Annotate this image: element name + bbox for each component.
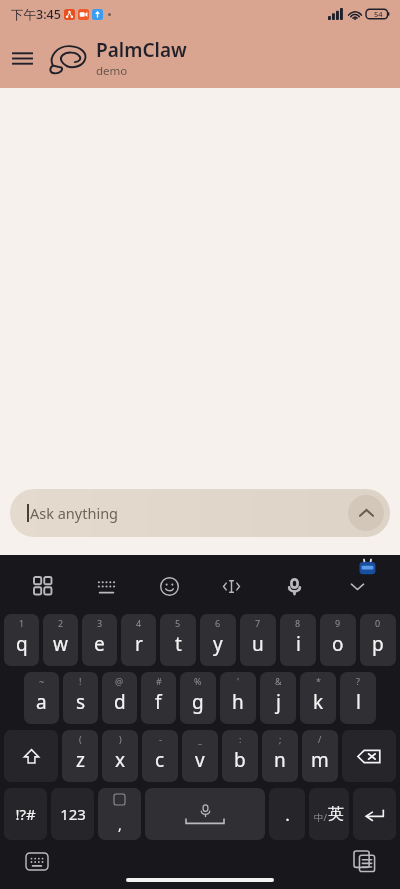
staticText: @	[115, 675, 124, 687]
button[interactable]: 123	[51, 788, 94, 840]
staticText: y	[213, 631, 223, 657]
button[interactable]: Enter	[353, 788, 396, 840]
staticText: /	[318, 733, 322, 745]
button[interactable]: !	[63, 672, 98, 724]
button[interactable]: Assistant	[357, 557, 378, 578]
button[interactable]: :	[222, 730, 258, 782]
staticText: u	[252, 631, 264, 657]
button[interactable]: Comma and settings	[98, 788, 141, 840]
staticText: z	[76, 747, 85, 773]
button[interactable]: '	[220, 672, 256, 724]
button[interactable]: Clipboard	[350, 847, 378, 875]
staticText: 下午3:45	[11, 6, 61, 23]
button[interactable]: Send	[348, 495, 384, 531]
staticText: ,	[118, 815, 122, 834]
button[interactable]: 2	[43, 614, 78, 666]
button[interactable]: 6	[200, 614, 236, 666]
staticText: .	[285, 803, 290, 826]
button[interactable]: 0	[360, 614, 396, 666]
staticText: a	[36, 689, 47, 715]
staticText: 7	[255, 617, 261, 629]
button[interactable]: Backspace	[342, 730, 396, 782]
button[interactable]: !?#	[4, 788, 47, 840]
staticText: ~	[39, 675, 45, 687]
staticText: ?	[356, 675, 360, 687]
staticText: m	[311, 747, 329, 773]
staticText: %	[194, 675, 202, 687]
staticText: s	[76, 689, 86, 715]
button[interactable]: ;	[262, 730, 298, 782]
staticText: d	[114, 689, 126, 715]
staticText: n	[274, 747, 286, 773]
staticText: j	[276, 689, 281, 715]
staticText: 4	[136, 617, 142, 629]
staticText: demo	[96, 63, 128, 79]
button[interactable]: ?	[340, 672, 376, 724]
button[interactable]: -	[142, 730, 178, 782]
staticText: 8	[295, 617, 301, 629]
button[interactable]: Switch keyboard	[23, 847, 51, 875]
staticText: 0	[375, 617, 381, 629]
button[interactable]: %	[180, 672, 216, 724]
staticText: t	[175, 631, 182, 657]
button[interactable]: &	[260, 672, 296, 724]
button[interactable]: Apps	[23, 566, 63, 606]
staticText: )	[119, 733, 122, 745]
button[interactable]: @	[102, 672, 137, 724]
staticText: 2	[58, 617, 64, 629]
button[interactable]: 5	[160, 614, 196, 666]
button[interactable]: Hide keyboard	[337, 566, 377, 606]
button[interactable]: Voice input	[274, 566, 314, 606]
button[interactable]: ~	[24, 672, 59, 724]
button[interactable]: *	[300, 672, 336, 724]
button[interactable]: Space and voice input	[145, 788, 265, 840]
button[interactable]: 7	[240, 614, 276, 666]
button[interactable]: _	[182, 730, 218, 782]
button[interactable]: 中/	[309, 788, 349, 840]
staticText: 中/	[314, 811, 328, 824]
staticText: (	[79, 733, 82, 745]
button[interactable]: )	[102, 730, 138, 782]
staticText: Ask anything	[30, 503, 119, 523]
staticText: o	[332, 631, 344, 657]
button[interactable]: /	[302, 730, 338, 782]
button[interactable]: 9	[320, 614, 356, 666]
button[interactable]: 4	[121, 614, 156, 666]
staticText: x	[115, 747, 126, 773]
button[interactable]: 3	[82, 614, 117, 666]
staticText: 6	[215, 617, 221, 629]
staticText: #	[156, 675, 162, 687]
staticText: !?#	[15, 804, 36, 824]
staticText: 3	[97, 617, 103, 629]
staticText: 5	[175, 617, 181, 629]
button[interactable]: .	[269, 788, 305, 840]
staticText: 54	[374, 9, 383, 19]
staticText: &	[275, 675, 282, 687]
button[interactable]: (	[62, 730, 98, 782]
button[interactable]: 1	[4, 614, 39, 666]
staticText: b	[234, 747, 246, 773]
staticText: -	[159, 733, 162, 745]
staticText: 9	[335, 617, 341, 629]
button[interactable]: Emoji	[149, 566, 189, 606]
button[interactable]: #	[141, 672, 176, 724]
staticText: *	[316, 675, 321, 687]
staticText: :	[239, 733, 242, 745]
button[interactable]: Open navigation menu	[0, 36, 44, 80]
staticText: '	[237, 675, 240, 687]
button[interactable]: Text cursor	[211, 566, 251, 606]
button[interactable]: 8	[280, 614, 316, 666]
staticText: c	[155, 747, 165, 773]
button[interactable]: Shift	[4, 730, 58, 782]
button[interactable]: Ask anything	[10, 489, 390, 537]
staticText: q	[16, 631, 28, 657]
staticText: 英	[328, 804, 344, 824]
staticText: g	[192, 689, 204, 715]
staticText: r	[135, 631, 143, 657]
staticText: f	[155, 689, 162, 715]
staticText: p	[372, 631, 384, 657]
staticText: i	[296, 631, 301, 657]
button[interactable]: Keyboard layout	[86, 566, 126, 606]
staticText: e	[94, 631, 105, 657]
staticText: ;	[279, 733, 282, 745]
